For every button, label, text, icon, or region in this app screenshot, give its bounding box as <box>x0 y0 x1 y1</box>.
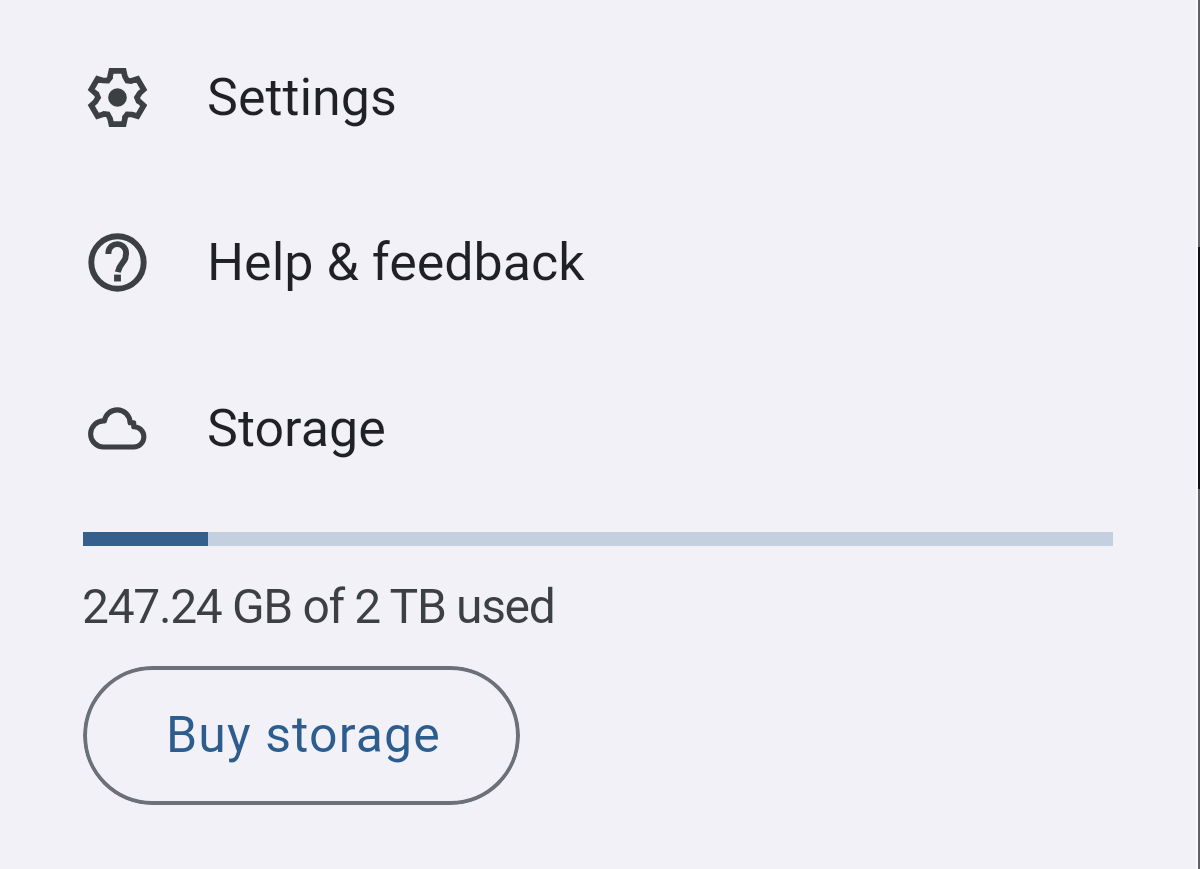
other: Settings <box>88 68 147 127</box>
staticText: Storage <box>207 398 386 459</box>
button[interactable]: Settings <box>0 35 1200 159</box>
button[interactable]: Help & feedback <box>0 200 1200 324</box>
staticText: Help & feedback <box>207 232 585 293</box>
button[interactable]: Storage <box>0 366 1200 490</box>
staticText: Settings <box>207 67 397 128</box>
staticText: 247.24 GB of 2 TB used <box>82 578 555 634</box>
staticText: Buy storage <box>166 706 441 765</box>
other: Help & feedback <box>88 233 147 292</box>
other: Storage <box>88 399 147 458</box>
button[interactable]: Buy storage <box>83 666 520 805</box>
